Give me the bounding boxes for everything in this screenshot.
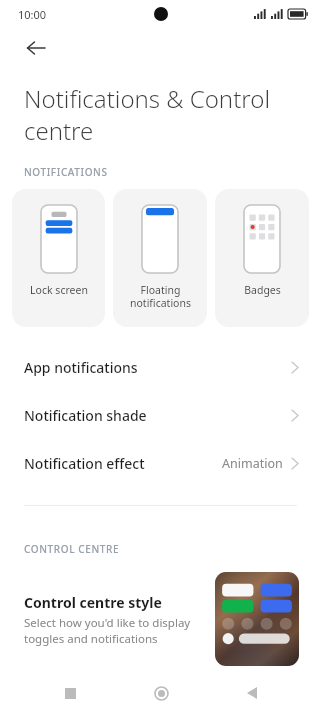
staticText: CONTROL CENTRE xyxy=(24,542,120,556)
staticText: Notifications & Control centre xyxy=(24,82,283,147)
button[interactable]: App notifications xyxy=(0,343,321,391)
staticText: Floating notifications xyxy=(130,283,191,310)
button[interactable]: Back xyxy=(230,672,274,714)
button[interactable]: Notification shade xyxy=(0,391,321,439)
button[interactable]: Badges xyxy=(215,189,309,327)
button[interactable]: Control centre style xyxy=(0,566,321,672)
staticText: NOTIFICATIONS xyxy=(24,165,108,179)
button[interactable]: Recents xyxy=(48,672,92,714)
staticText: Notification effect xyxy=(24,454,145,473)
staticText: Control centre style xyxy=(24,593,162,612)
staticText: Notification shade xyxy=(24,406,147,425)
button[interactable]: Home xyxy=(139,672,183,714)
staticText: Lock screen xyxy=(30,283,88,297)
button[interactable]: Notification effect xyxy=(0,439,321,487)
staticText: 10:00 xyxy=(18,7,47,22)
button[interactable]: Floating notifications xyxy=(113,189,207,327)
staticText: Select how you'd like to display toggles… xyxy=(24,615,205,646)
staticText: Badges xyxy=(244,283,281,297)
staticText: App notifications xyxy=(24,358,138,377)
button[interactable]: Back xyxy=(14,28,58,68)
button[interactable]: Lock screen xyxy=(12,189,105,327)
staticText: Animation xyxy=(222,455,283,472)
